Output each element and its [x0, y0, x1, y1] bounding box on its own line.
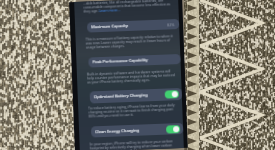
staticText: 82%	[167, 22, 175, 27]
staticText: This is a measure of battery capacity re…	[85, 33, 175, 50]
button[interactable]: Toggle	[166, 125, 180, 134]
staticText: In your region, iPhone will try to reduc…	[89, 138, 179, 150]
button[interactable]: Maximum Capacity	[87, 19, 179, 32]
staticText: Maximum Capacity	[91, 23, 128, 30]
staticText: Optimized Battery Charging	[94, 92, 148, 100]
staticText: Peak Performance Capability	[92, 57, 149, 65]
button[interactable]: Optimized Battery Charging	[90, 88, 182, 103]
staticText: To reduce battery aging, iPhone learns f…	[88, 102, 177, 119]
staticText: …able batteries, like all rechargeable b…	[83, 0, 175, 14]
staticText: Built-in dynamic software and hardware s…	[87, 68, 176, 85]
button[interactable]: Toggle	[165, 90, 179, 99]
button[interactable]: Clean Energy Charging	[91, 123, 183, 137]
button[interactable]: Peak Performance Capability	[88, 54, 181, 67]
staticText: Clean Energy Charging	[95, 128, 139, 135]
